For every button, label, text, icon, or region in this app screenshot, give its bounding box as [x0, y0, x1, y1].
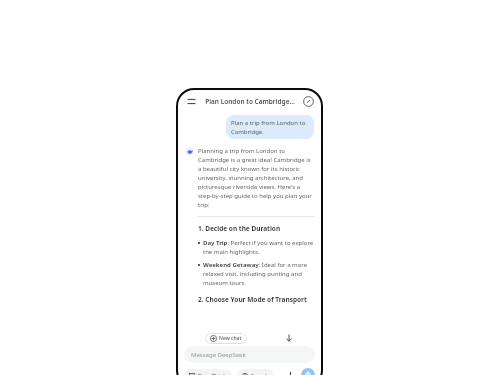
- button[interactable]: New chat: [301, 94, 315, 108]
- staticText: 1. Decide on the Duration: [198, 224, 281, 233]
- button[interactable]: Send: [301, 368, 315, 375]
- staticText: Weekend Getaway: Ideal for a more relaxe…: [203, 261, 314, 287]
- staticText: Day Trip: Perfect if you want to explore…: [203, 239, 314, 256]
- button[interactable]: Scroll to bottom: [283, 332, 295, 344]
- staticText: 2. Choose Your Mode of Transport: [198, 295, 307, 304]
- button[interactable]: DeepThink: [184, 369, 232, 375]
- button[interactable]: Search: [237, 369, 274, 375]
- staticText: New chat: [219, 335, 242, 342]
- staticText: Planning a trip from London to Cambridge…: [198, 147, 314, 209]
- staticText: Plan London to Cambridge...: [205, 97, 295, 106]
- button[interactable]: Menu: [184, 94, 198, 108]
- button[interactable]: Message DeepSeek: [184, 346, 315, 363]
- button[interactable]: New chat: [205, 333, 247, 344]
- staticText: Search: [251, 372, 269, 375]
- staticText: Plan a trip from London to Cambridge.: [231, 119, 309, 135]
- staticText: Message DeepSeek: [191, 351, 246, 359]
- staticText: DeepThink: [198, 372, 227, 375]
- button[interactable]: Plan a trip from London to Cambridge.: [226, 115, 314, 139]
- button[interactable]: Add attachment: [283, 368, 297, 375]
